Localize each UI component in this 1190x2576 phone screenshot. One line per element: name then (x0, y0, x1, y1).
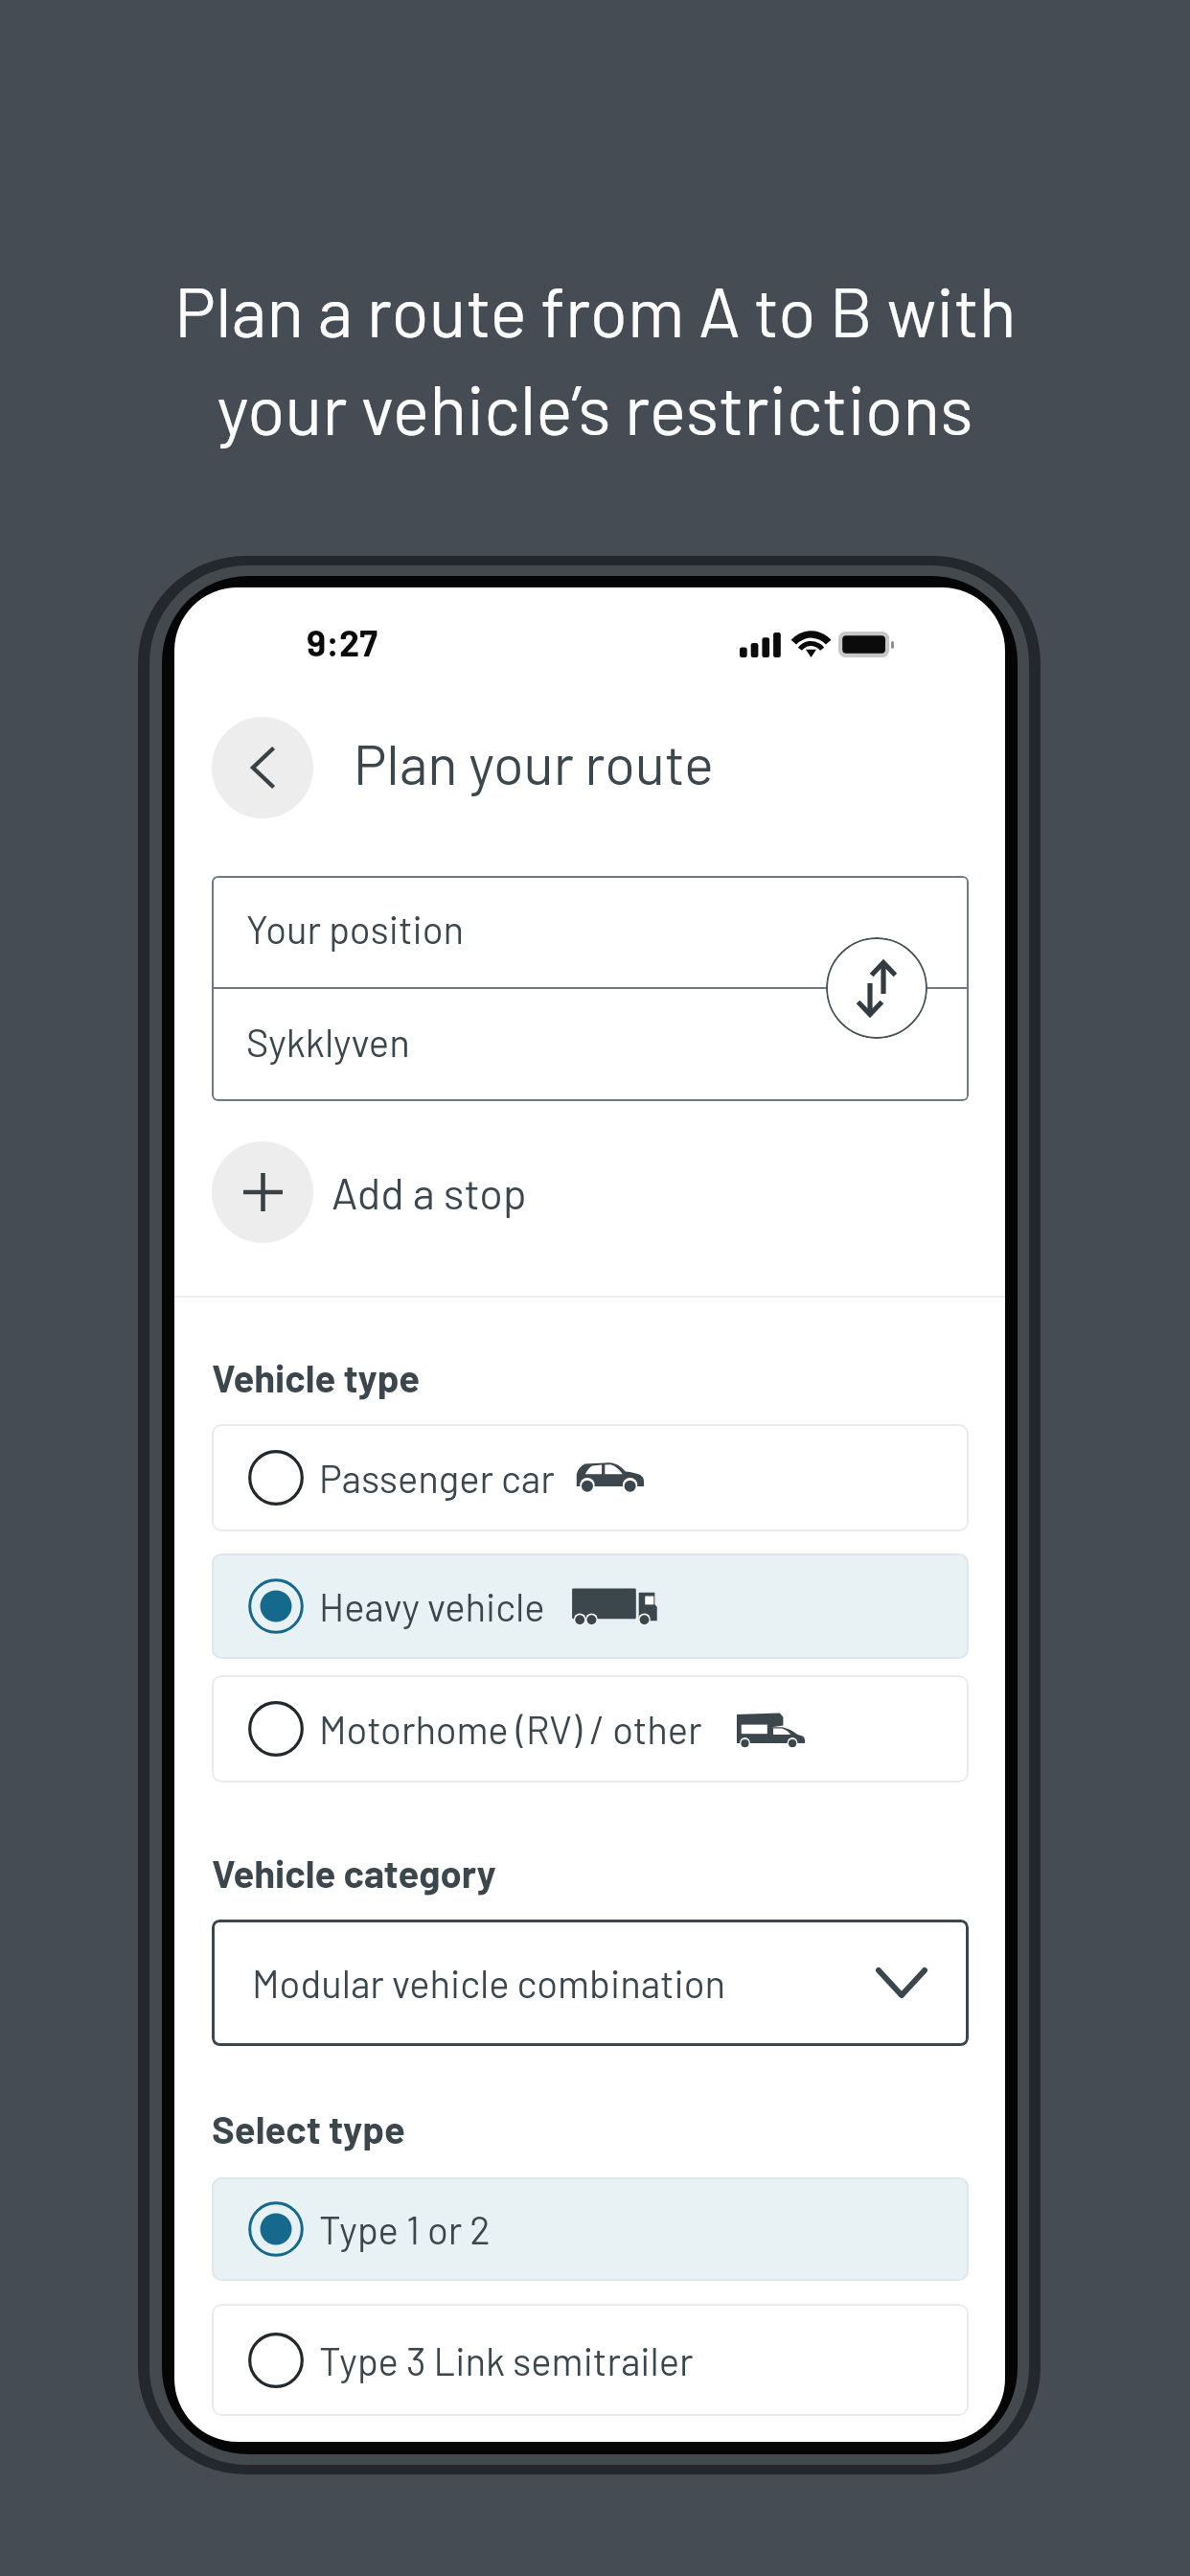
staticText: Select type (212, 2105, 405, 2151)
staticText: Vehicle category (212, 1850, 496, 1896)
staticText: Type 3 Link semitrailer (319, 2337, 694, 2383)
button[interactable] (212, 876, 969, 988)
staticText: Passenger car (319, 1455, 555, 1501)
staticText: Plan your route (354, 729, 715, 796)
button[interactable]: Heavy vehicle (212, 1553, 969, 1659)
staticText: Add a stop (332, 1166, 527, 1218)
button[interactable]: Type 3 Link semitrailer (212, 2304, 969, 2416)
staticText: Your position (246, 906, 465, 952)
staticText: Motorhome (RV) / other (319, 1706, 702, 1752)
staticText: Plan a route from A to B with (174, 268, 1017, 351)
button[interactable]: Modular vehicle combination (212, 1920, 969, 2046)
staticText: Sykklyven (246, 1019, 410, 1065)
staticText: Heavy vehicle (319, 1583, 545, 1629)
button[interactable] (212, 989, 969, 1101)
button[interactable]: Passenger car (212, 1424, 969, 1531)
button[interactable]: Motorhome (RV) / other (212, 1675, 969, 1782)
button[interactable]: Add a stop (332, 1141, 542, 1243)
staticText: your vehicle’s restrictions (217, 366, 973, 448)
staticText: Modular vehicle combination (252, 1960, 726, 2006)
button[interactable]: Swap start and destination (826, 937, 927, 1039)
staticText: 9:27 (307, 620, 378, 664)
staticText: Vehicle type (212, 1354, 421, 1400)
button[interactable]: Add a stop (212, 1141, 313, 1243)
button[interactable]: Type 1 or 2 (212, 2177, 969, 2281)
button[interactable]: Back (212, 717, 313, 818)
staticText: Type 1 or 2 (319, 2206, 491, 2252)
